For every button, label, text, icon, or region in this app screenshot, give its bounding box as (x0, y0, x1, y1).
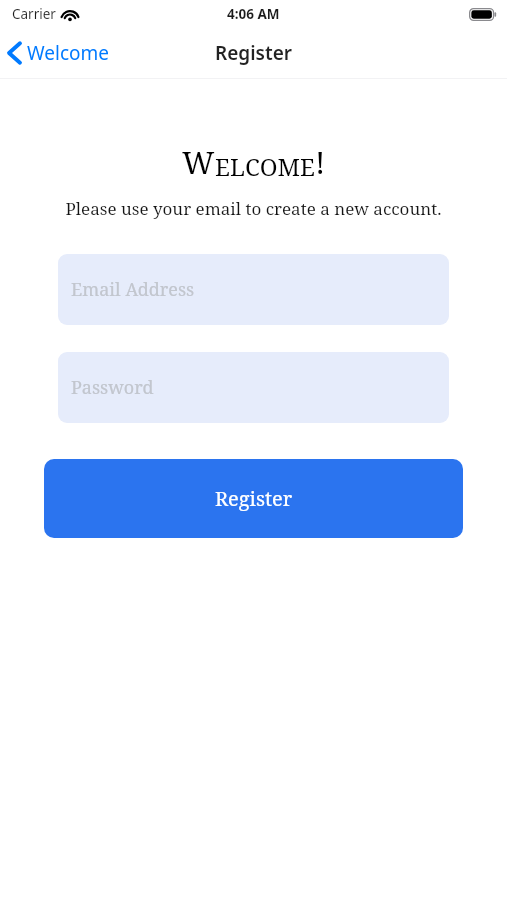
other: Wi-Fi (61, 8, 79, 21)
staticText: Please use your email to create a new ac… (20, 197, 487, 220)
staticText: Register (215, 485, 293, 512)
staticText: Email Address (71, 277, 195, 302)
button[interactable]: Back (0, 34, 120, 72)
staticText: ELCOME (215, 150, 315, 183)
staticText: W (182, 141, 215, 183)
button[interactable]: Register (44, 459, 463, 538)
staticText: Welcome (27, 40, 110, 66)
staticText: 4:06 AM (227, 5, 280, 23)
button[interactable]: Password (58, 352, 449, 423)
staticText: Register (215, 40, 293, 66)
button[interactable]: Email Address (58, 254, 449, 325)
other: Battery (469, 8, 497, 21)
staticText: Carrier (12, 5, 56, 23)
other: Back (8, 42, 21, 64)
staticText: ! (315, 141, 326, 183)
staticText: Password (71, 375, 154, 400)
